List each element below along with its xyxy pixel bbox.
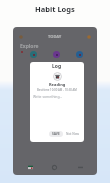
- staticText: Habit Logs: [35, 4, 75, 14]
- button[interactable]: Profile: [19, 35, 23, 39]
- staticText: Reading: [49, 82, 66, 87]
- staticText: Not Now: [66, 132, 80, 136]
- button[interactable]: SAVE: [49, 131, 63, 137]
- staticText: Log: [52, 63, 62, 70]
- button[interactable]: Home: [24, 160, 36, 174]
- button[interactable]: Not Now: [65, 131, 81, 137]
- button[interactable]: [30, 51, 37, 58]
- button[interactable]: Stats: [48, 160, 60, 174]
- button[interactable]: Profile: [74, 160, 86, 174]
- button[interactable]: [53, 51, 60, 58]
- staticText: Best time 10:00 AM - 10:30 AM: [37, 88, 77, 92]
- button[interactable]: [76, 51, 83, 58]
- staticText: TODAY: [48, 34, 62, 39]
- button[interactable]: Add entry: [87, 35, 91, 39]
- staticText: Explore: [20, 43, 39, 50]
- staticText: Write something...: [33, 94, 63, 99]
- staticText: SAVE: [52, 132, 60, 136]
